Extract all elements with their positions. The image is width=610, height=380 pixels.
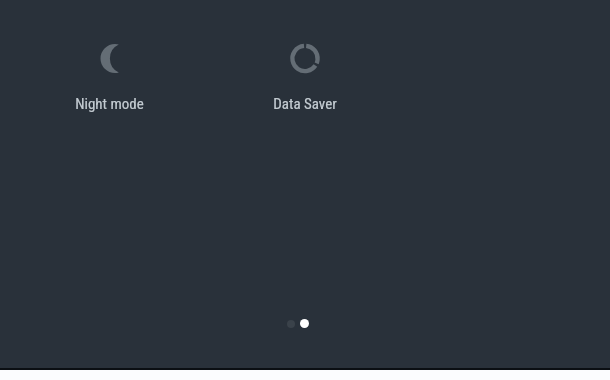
button[interactable]: Page 2 (300, 319, 309, 328)
button[interactable]: Page 1 (287, 320, 295, 328)
staticText: Night mode (75, 95, 144, 113)
staticText: Data Saver (273, 95, 337, 113)
other: Data Saver (290, 44, 320, 74)
button[interactable]: Data Saver (240, 44, 369, 113)
other: Night mode (95, 44, 125, 74)
button[interactable]: Night mode (45, 44, 174, 113)
